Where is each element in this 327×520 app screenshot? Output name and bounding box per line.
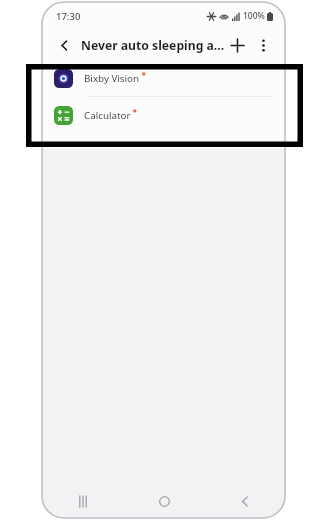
staticText: Never auto sleeping a… — [81, 37, 225, 54]
button[interactable]: Back — [52, 33, 76, 57]
button[interactable]: Back — [225, 486, 265, 516]
button[interactable]: Add — [225, 33, 249, 57]
button[interactable]: Calculator — [42, 97, 285, 133]
button[interactable]: More options — [251, 33, 275, 57]
button[interactable]: Home — [144, 486, 184, 516]
staticText: Calculator — [84, 109, 131, 122]
button[interactable]: Recents — [63, 486, 103, 516]
button[interactable]: Bixby Vision — [42, 60, 285, 96]
staticText: Bixby Vision — [84, 72, 140, 85]
staticText: 17:30 — [56, 10, 81, 23]
staticText: 100% — [243, 10, 265, 22]
